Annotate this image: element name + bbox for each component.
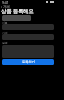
staticText: ‹ 거래 (1, 4, 10, 8)
staticText: 9:41 (2, 0, 9, 5)
staticText: 등록하기 (22, 60, 35, 64)
staticText: 설명 (2, 41, 8, 45)
button[interactable]: 등록하기 (2, 59, 54, 65)
button[interactable] (2, 15, 31, 21)
staticText: 가격 (2, 31, 8, 35)
button[interactable]: Back (1, 4, 11, 8)
staticText: 이름 (2, 21, 8, 25)
staticText: 상품 등록해요 (1, 7, 34, 14)
